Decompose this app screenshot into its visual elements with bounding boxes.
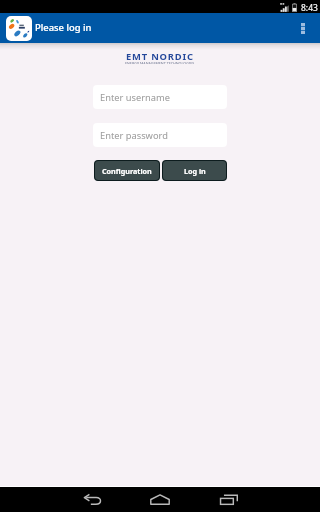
staticText: ENERGY MANAGEMENT TECHNOLOGIES — [125, 61, 195, 64]
staticText: Please log in — [35, 21, 92, 34]
staticText: Log in — [184, 166, 206, 176]
button[interactable]: Configuration — [94, 160, 160, 181]
button[interactable]: Enter password — [93, 123, 227, 147]
staticText: EMT NORDIC — [126, 50, 194, 63]
staticText: 8:43 — [301, 2, 318, 14]
button[interactable]: Log in — [162, 160, 227, 181]
button[interactable]: More options — [286, 13, 320, 43]
button[interactable]: Enter username — [93, 85, 227, 109]
button[interactable]: Recents — [207, 487, 251, 512]
staticText: Configuration — [102, 166, 152, 176]
button[interactable]: Home — [138, 487, 182, 512]
staticText: Enter password — [100, 129, 168, 142]
staticText: Enter username — [100, 91, 170, 104]
button[interactable]: Back — [69, 487, 113, 512]
